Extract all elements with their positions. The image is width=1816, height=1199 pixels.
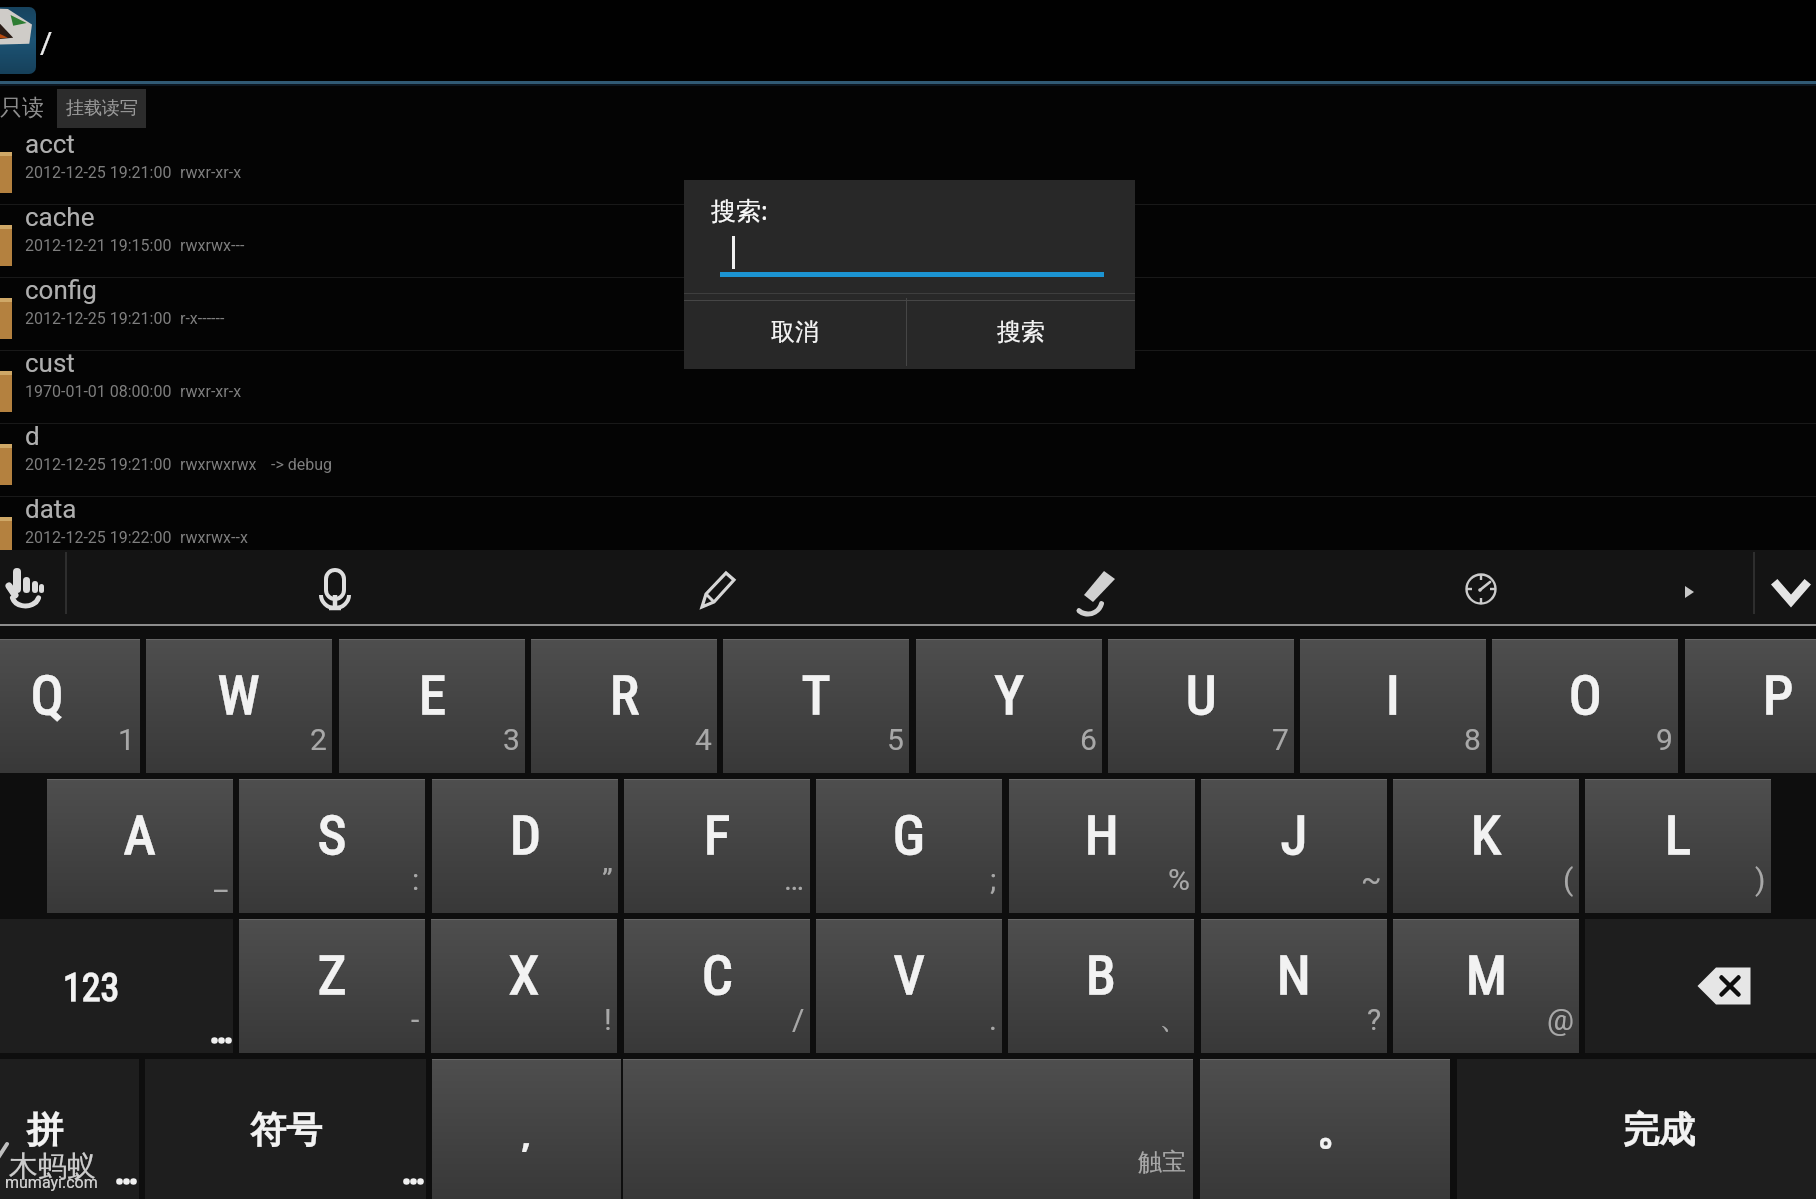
button[interactable]: 。 <box>1200 1059 1450 1199</box>
staticText: 6 <box>1080 722 1097 757</box>
button[interactable]: Backspace <box>1585 919 1816 1053</box>
button[interactable]: acct <box>0 132 1816 205</box>
button[interactable]: I <box>1300 639 1486 773</box>
staticText: I <box>1386 664 1400 727</box>
staticText: rwxrwx--- <box>180 236 245 255</box>
button[interactable]: , <box>432 1059 621 1199</box>
button[interactable]: Q <box>0 639 140 773</box>
button[interactable]: F <box>624 779 810 913</box>
button[interactable]: App icon <box>0 7 36 74</box>
button[interactable]: U <box>1108 639 1294 773</box>
button[interactable]: X <box>431 919 617 1053</box>
staticText: rwxr-xr-x <box>180 382 242 401</box>
button[interactable]: 123 <box>0 919 233 1053</box>
staticText: 完成 <box>1623 1107 1695 1152</box>
staticText: 符号 <box>250 1107 322 1152</box>
staticText: 搜索 <box>997 317 1045 347</box>
staticText: 1970-01-01 08:00:00 <box>25 382 172 401</box>
button[interactable]: 符号 <box>145 1059 426 1199</box>
button[interactable]: Y <box>916 639 1102 773</box>
staticText: : <box>412 862 420 897</box>
button[interactable]: E <box>339 639 525 773</box>
staticText: -> debug <box>271 455 333 474</box>
button[interactable]: cust <box>0 351 1816 424</box>
button[interactable]: V <box>816 919 1002 1053</box>
button[interactable]: B <box>1008 919 1194 1053</box>
button[interactable]: M <box>1393 919 1579 1053</box>
staticText: M <box>1466 944 1507 1007</box>
button[interactable]: A <box>47 779 233 913</box>
staticText: B <box>1086 944 1116 1007</box>
staticText: K <box>1471 804 1501 867</box>
staticText: S <box>318 804 347 867</box>
button[interactable]: D <box>432 779 618 913</box>
button[interactable]: G <box>816 779 1002 913</box>
staticText: H <box>1085 804 1119 867</box>
button[interactable]: config <box>0 278 1816 351</box>
staticText: 5 <box>887 722 904 757</box>
button[interactable]: S <box>239 779 425 913</box>
staticText: 3 <box>503 722 520 757</box>
button[interactable]: Voice input <box>318 568 352 612</box>
staticText: L <box>1665 804 1691 867</box>
staticText: rwxrwxrwx <box>180 455 257 474</box>
staticText: 2012-12-25 19:22:00 <box>25 528 172 547</box>
button[interactable]: J <box>1201 779 1387 913</box>
button[interactable]: 触宝 <box>623 1059 1193 1199</box>
button[interactable]: W <box>146 639 332 773</box>
button[interactable]: 拼 <box>0 1059 139 1199</box>
staticText: 7 <box>1272 722 1289 757</box>
button[interactable]: Handwriting <box>6 566 44 612</box>
button[interactable]: cache <box>0 205 1816 278</box>
staticText: G <box>893 804 925 867</box>
staticText: ( <box>1563 862 1574 897</box>
staticText: 4 <box>695 722 712 757</box>
staticText: , <box>521 1109 532 1158</box>
button[interactable]: Recent <box>1464 572 1498 606</box>
staticText: 触宝 <box>1138 1147 1186 1177</box>
button[interactable]: L <box>1585 779 1771 913</box>
staticText: D <box>510 804 541 867</box>
staticText: W <box>218 664 260 727</box>
button[interactable]: N <box>1201 919 1387 1053</box>
staticText: rwxr-xr-x <box>180 163 242 182</box>
button[interactable]: Hide keyboard <box>1772 580 1810 606</box>
staticText: cust <box>25 348 75 378</box>
staticText: mumayi.com <box>5 1173 98 1192</box>
staticText: ~ <box>1361 862 1382 897</box>
staticText: rwxrwx--x <box>180 528 248 547</box>
staticText: cache <box>25 202 95 232</box>
staticText: d <box>25 421 40 451</box>
staticText: data <box>25 494 77 524</box>
staticText: 搜索: <box>711 193 768 227</box>
button[interactable]: R <box>531 639 717 773</box>
staticText: 2012-12-21 19:15:00 <box>25 236 172 255</box>
staticText: 挂载读写 <box>66 97 138 120</box>
button[interactable]: 完成 <box>1457 1059 1816 1199</box>
button[interactable]: 搜索 <box>907 298 1135 366</box>
button[interactable]: T <box>723 639 909 773</box>
staticText: C <box>702 944 733 1007</box>
staticText: Z <box>318 944 347 1007</box>
button[interactable]: K <box>1393 779 1579 913</box>
button[interactable]: data <box>0 497 1816 570</box>
staticText: E <box>419 664 446 727</box>
button[interactable]: Z <box>239 919 425 1053</box>
button[interactable]: Handwriting pad <box>700 570 738 608</box>
button[interactable]: C <box>624 919 810 1053</box>
button[interactable]: H <box>1009 779 1195 913</box>
button[interactable]: 取消 <box>684 298 906 366</box>
staticText: 123 <box>63 966 120 1011</box>
button[interactable]: d <box>0 424 1816 497</box>
button[interactable]: 挂载读写 <box>57 89 146 128</box>
staticText: Y <box>995 664 1024 727</box>
staticText: A <box>124 804 156 867</box>
staticText: T <box>802 664 831 727</box>
button[interactable]: More <box>1683 584 1697 600</box>
staticText: % <box>1168 862 1190 897</box>
staticText: V <box>894 944 925 1007</box>
button[interactable]: O <box>1492 639 1678 773</box>
staticText: 。 <box>1316 1104 1358 1157</box>
button[interactable]: Brush <box>1072 568 1120 614</box>
button[interactable]: P <box>1685 639 1816 773</box>
